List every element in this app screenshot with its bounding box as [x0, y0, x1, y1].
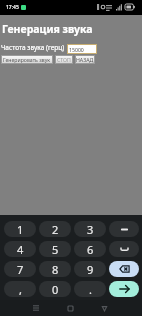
staticText: 7	[17, 262, 24, 277]
button[interactable]: 15000	[67, 44, 97, 54]
staticText: 8	[52, 262, 59, 277]
staticText: НАЗАД	[76, 56, 94, 63]
button[interactable]: Back	[94, 300, 114, 316]
staticText: 15000	[69, 46, 84, 53]
button[interactable]: 8	[39, 261, 71, 277]
button[interactable]: Space	[109, 241, 139, 257]
staticText: 6	[87, 242, 94, 257]
button[interactable]: 9	[74, 261, 106, 277]
staticText: 17:45	[6, 4, 19, 11]
staticText: 3	[87, 222, 94, 237]
button[interactable]: Генерировать звук	[1, 55, 53, 64]
button[interactable]: СТОП	[55, 55, 73, 64]
button[interactable]: 5	[39, 241, 71, 257]
staticText: СТОП	[57, 56, 71, 63]
button[interactable]: 4	[4, 241, 36, 257]
staticText: 0	[52, 282, 59, 297]
staticText: Генерация звука	[2, 22, 93, 36]
button[interactable]: НАЗАД	[75, 55, 95, 64]
button[interactable]: Minus	[109, 221, 139, 237]
button[interactable]: ,	[4, 281, 36, 297]
button[interactable]: Recent apps	[26, 300, 46, 316]
button[interactable]: 0	[39, 281, 71, 297]
button[interactable]: Home	[60, 300, 80, 316]
button[interactable]: 1	[4, 221, 36, 237]
staticText: 1	[17, 222, 24, 237]
button[interactable]: Backspace	[109, 261, 139, 277]
staticText: Генерировать звук	[3, 56, 51, 63]
staticText: ,	[19, 282, 22, 297]
staticText: Частота звука (герц)	[1, 43, 65, 52]
button[interactable]: 6	[74, 241, 106, 257]
staticText: 4	[17, 242, 24, 257]
button[interactable]: 7	[4, 261, 36, 277]
staticText: 2	[52, 222, 59, 237]
button[interactable]: 2	[39, 221, 71, 237]
button[interactable]: .	[74, 281, 106, 297]
staticText: 9	[87, 262, 94, 277]
button[interactable]: Enter	[109, 281, 139, 297]
staticText: .	[89, 282, 92, 297]
staticText: 5	[52, 242, 59, 257]
button[interactable]: 3	[74, 221, 106, 237]
